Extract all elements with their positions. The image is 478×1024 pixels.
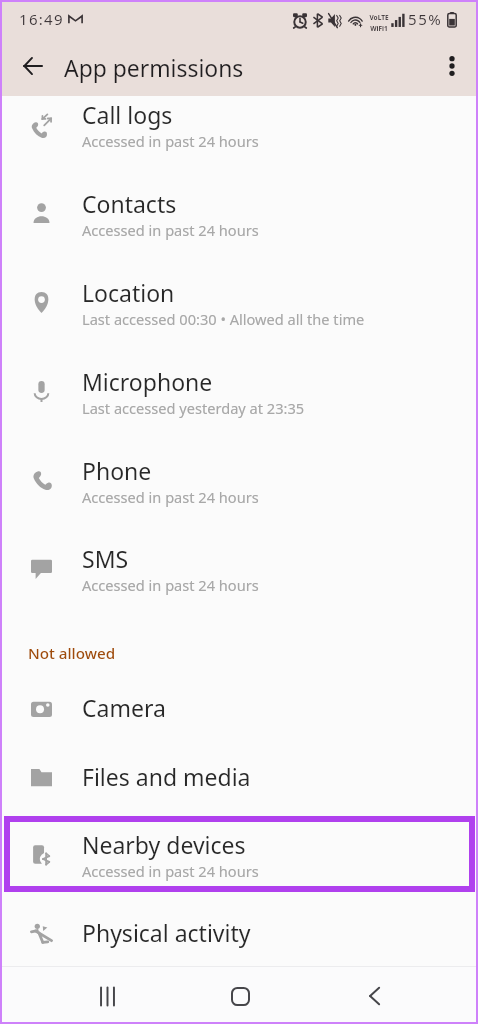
staticText: Accessed in past 24 hours [82,861,259,881]
staticText: Microphone [82,366,213,397]
staticText: WiFi1 [369,24,389,33]
button[interactable]: Recent apps [67,966,147,1024]
staticText: 16:49 [19,9,64,29]
staticText: VoLTE [369,13,389,22]
staticText: 55% [408,9,443,29]
staticText: Call logs [82,99,173,130]
staticText: SMS [82,543,129,574]
staticText: Last accessed yesterday at 23:35 [82,398,305,418]
staticText: Files and media [82,761,251,792]
button[interactable]: Call logs [0,80,478,150]
staticText: Not allowed [28,643,116,664]
staticText: Nearby devices [82,829,246,860]
staticText: Accessed in past 24 hours [82,220,259,240]
staticText: Accessed in past 24 hours [82,487,259,507]
button[interactable]: Back [334,966,414,1024]
button[interactable]: Files and media [0,742,478,790]
staticText: Location [82,277,175,308]
staticText: Phone [82,455,152,486]
button[interactable]: Home [200,966,280,1024]
staticText: Accessed in past 24 hours [82,575,259,595]
button[interactable]: Phone [0,436,478,506]
button[interactable]: Physical activity [0,898,478,946]
button[interactable]: Navigate up [9,42,57,90]
button[interactable]: Microphone [0,347,478,417]
staticText: Accessed in past 24 hours [82,131,259,151]
button[interactable]: Nearby devices [0,810,478,880]
staticText: Contacts [82,188,177,219]
staticText: App permissions [64,53,244,84]
button[interactable]: Contacts [0,169,478,239]
staticText: Camera [82,692,166,723]
staticText: Physical activity [82,917,251,948]
button[interactable]: More options [428,42,476,90]
staticText: Last accessed 00:30 • Allowed all the ti… [82,309,365,329]
button[interactable]: Location [0,258,478,328]
button[interactable]: Camera [0,673,478,721]
button[interactable]: SMS [0,524,478,594]
